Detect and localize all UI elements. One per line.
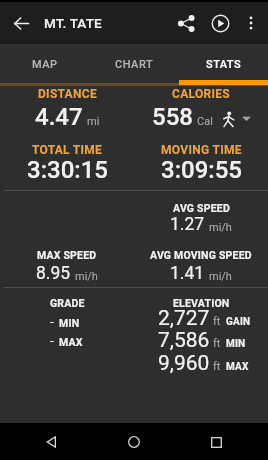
staticText: 3:30:15: [27, 156, 108, 184]
staticText: MAX: [59, 336, 83, 348]
staticText: mi/h: [75, 270, 98, 283]
button[interactable]: Play: [204, 7, 236, 39]
staticText: GRADE: [50, 297, 85, 309]
button[interactable]: Back: [2, 4, 40, 42]
staticText: ft: [213, 360, 221, 373]
staticText: MIN: [226, 338, 246, 350]
staticText: ELEVATION: [173, 297, 230, 309]
staticText: -: [50, 333, 54, 348]
staticText: mi: [87, 115, 100, 128]
staticText: AVG SPEED: [173, 202, 230, 214]
button[interactable]: Share: [168, 5, 204, 41]
staticText: mi/h: [209, 270, 232, 283]
staticText: DISTANCE: [38, 87, 97, 101]
button[interactable]: STATS: [179, 44, 268, 85]
button[interactable]: Back: [36, 426, 68, 458]
staticText: MOVING TIME: [161, 143, 242, 157]
staticText: TOTAL TIME: [32, 143, 103, 157]
staticText: MIN: [59, 317, 80, 329]
staticText: 2,727: [158, 306, 210, 331]
button[interactable]: CALORIES: [134, 87, 268, 101]
staticText: AVG MOVING SPEED: [150, 249, 252, 261]
button[interactable]: Home: [118, 426, 150, 458]
button[interactable]: CHART: [90, 44, 179, 85]
button[interactable]: ELEVATION: [134, 297, 268, 309]
button[interactable]: 4.47: [0, 103, 134, 131]
staticText: ft: [213, 315, 221, 328]
staticText: 9,960: [158, 351, 210, 376]
staticText: MAX SPEED: [37, 249, 97, 261]
button[interactable]: 558: [134, 103, 268, 131]
button[interactable]: MAX SPEED: [0, 249, 134, 261]
staticText: -: [50, 314, 54, 329]
button[interactable]: 3:30:15: [0, 156, 134, 184]
button[interactable]: More options: [236, 8, 266, 38]
staticText: GAIN: [226, 316, 251, 328]
staticText: CHART: [115, 58, 154, 71]
staticText: 8.95: [36, 263, 71, 284]
staticText: MAP: [32, 58, 58, 71]
button[interactable]: MOVING TIME: [134, 143, 268, 157]
staticText: Cal: [197, 115, 213, 128]
button[interactable]: MAP: [0, 44, 90, 85]
staticText: 3:09:55: [161, 156, 242, 184]
staticText: 1.27: [170, 214, 205, 235]
button[interactable]: 8.95: [0, 263, 134, 284]
staticText: 4.47: [35, 103, 83, 131]
button[interactable]: GRADE: [0, 297, 134, 309]
button[interactable]: 3:09:55: [134, 156, 268, 184]
staticText: MT. TATE: [44, 15, 102, 31]
staticText: mi/h: [209, 221, 232, 234]
button[interactable]: 1.27: [134, 214, 268, 235]
button[interactable]: Recents: [200, 426, 232, 458]
button[interactable]: DISTANCE: [0, 87, 134, 101]
button[interactable]: TOTAL TIME: [0, 143, 134, 157]
staticText: 7,586: [158, 328, 210, 353]
button[interactable]: 1.41: [134, 263, 268, 284]
staticText: CALORIES: [172, 87, 231, 101]
staticText: STATS: [206, 58, 242, 71]
button[interactable]: AVG MOVING SPEED: [134, 249, 268, 261]
staticText: 1.41: [170, 263, 205, 284]
staticText: ft: [213, 337, 221, 350]
staticText: 558: [152, 103, 193, 131]
button[interactable]: AVG SPEED: [134, 202, 268, 214]
staticText: MAX: [226, 361, 249, 373]
